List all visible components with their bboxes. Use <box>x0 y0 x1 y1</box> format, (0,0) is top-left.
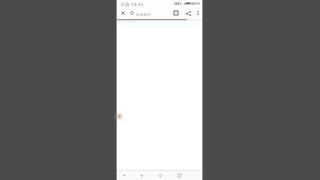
button[interactable]: 안전하지 <box>129 9 173 18</box>
button[interactable]: Share <box>183 8 193 18</box>
button[interactable]: Hide keyboard <box>119 170 129 180</box>
button[interactable]: Back <box>136 170 146 180</box>
button[interactable]: Close <box>118 8 128 18</box>
button[interactable]: Recents <box>174 170 184 180</box>
staticText: 안전하지 <box>136 12 151 17</box>
button[interactable]: Open in browser <box>171 8 181 18</box>
button[interactable]: Home <box>155 170 165 180</box>
button[interactable]: More options <box>193 8 203 18</box>
staticText: 오전 10:33 <box>121 2 144 7</box>
